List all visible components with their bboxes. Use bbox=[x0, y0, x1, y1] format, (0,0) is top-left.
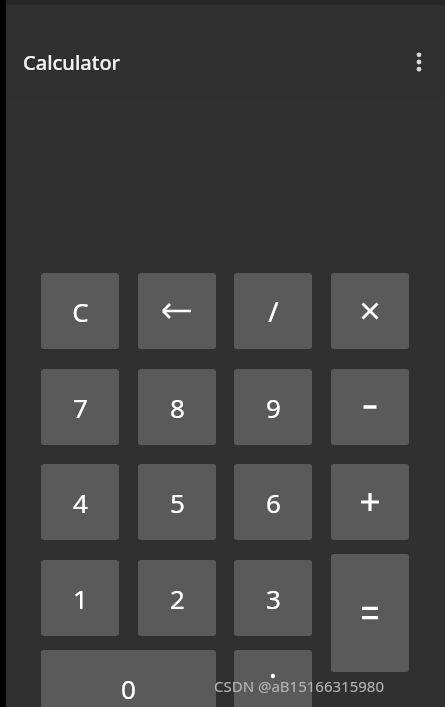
button[interactable]: 1 bbox=[41, 560, 119, 636]
button[interactable]: 5 bbox=[138, 464, 216, 540]
staticText: / bbox=[268, 292, 279, 330]
staticText: 1 bbox=[73, 581, 88, 616]
button[interactable]: Decimal point bbox=[234, 650, 312, 707]
staticText: C bbox=[72, 294, 89, 329]
button[interactable]: 7 bbox=[41, 369, 119, 445]
staticText: 4 bbox=[73, 485, 88, 520]
staticText: Calculator bbox=[23, 49, 121, 76]
button[interactable]: Add bbox=[331, 464, 409, 540]
staticText: 0 bbox=[121, 671, 136, 706]
staticText: 8 bbox=[170, 390, 185, 425]
staticText: 5 bbox=[170, 485, 185, 520]
button[interactable]: 4 bbox=[41, 464, 119, 540]
button[interactable]: 6 bbox=[234, 464, 312, 540]
staticText: CSDN @aB15166315980 bbox=[214, 676, 384, 696]
button[interactable]: 3 bbox=[234, 560, 312, 636]
button[interactable]: / bbox=[234, 273, 312, 349]
button[interactable]: Backspace bbox=[138, 273, 216, 349]
button[interactable]: Subtract bbox=[331, 369, 409, 445]
staticText: 6 bbox=[266, 485, 281, 520]
staticText: 9 bbox=[266, 390, 281, 425]
button[interactable]: 8 bbox=[138, 369, 216, 445]
button[interactable]: C bbox=[41, 273, 119, 349]
staticText: 7 bbox=[73, 390, 88, 425]
staticText: 2 bbox=[170, 581, 185, 616]
button[interactable]: 9 bbox=[234, 369, 312, 445]
button[interactable]: Equals bbox=[331, 554, 409, 672]
button[interactable]: 2 bbox=[138, 560, 216, 636]
button[interactable]: Multiply bbox=[331, 273, 409, 349]
button[interactable]: 0 bbox=[41, 650, 216, 707]
staticText: 3 bbox=[266, 581, 281, 616]
button[interactable]: More options bbox=[399, 42, 439, 82]
